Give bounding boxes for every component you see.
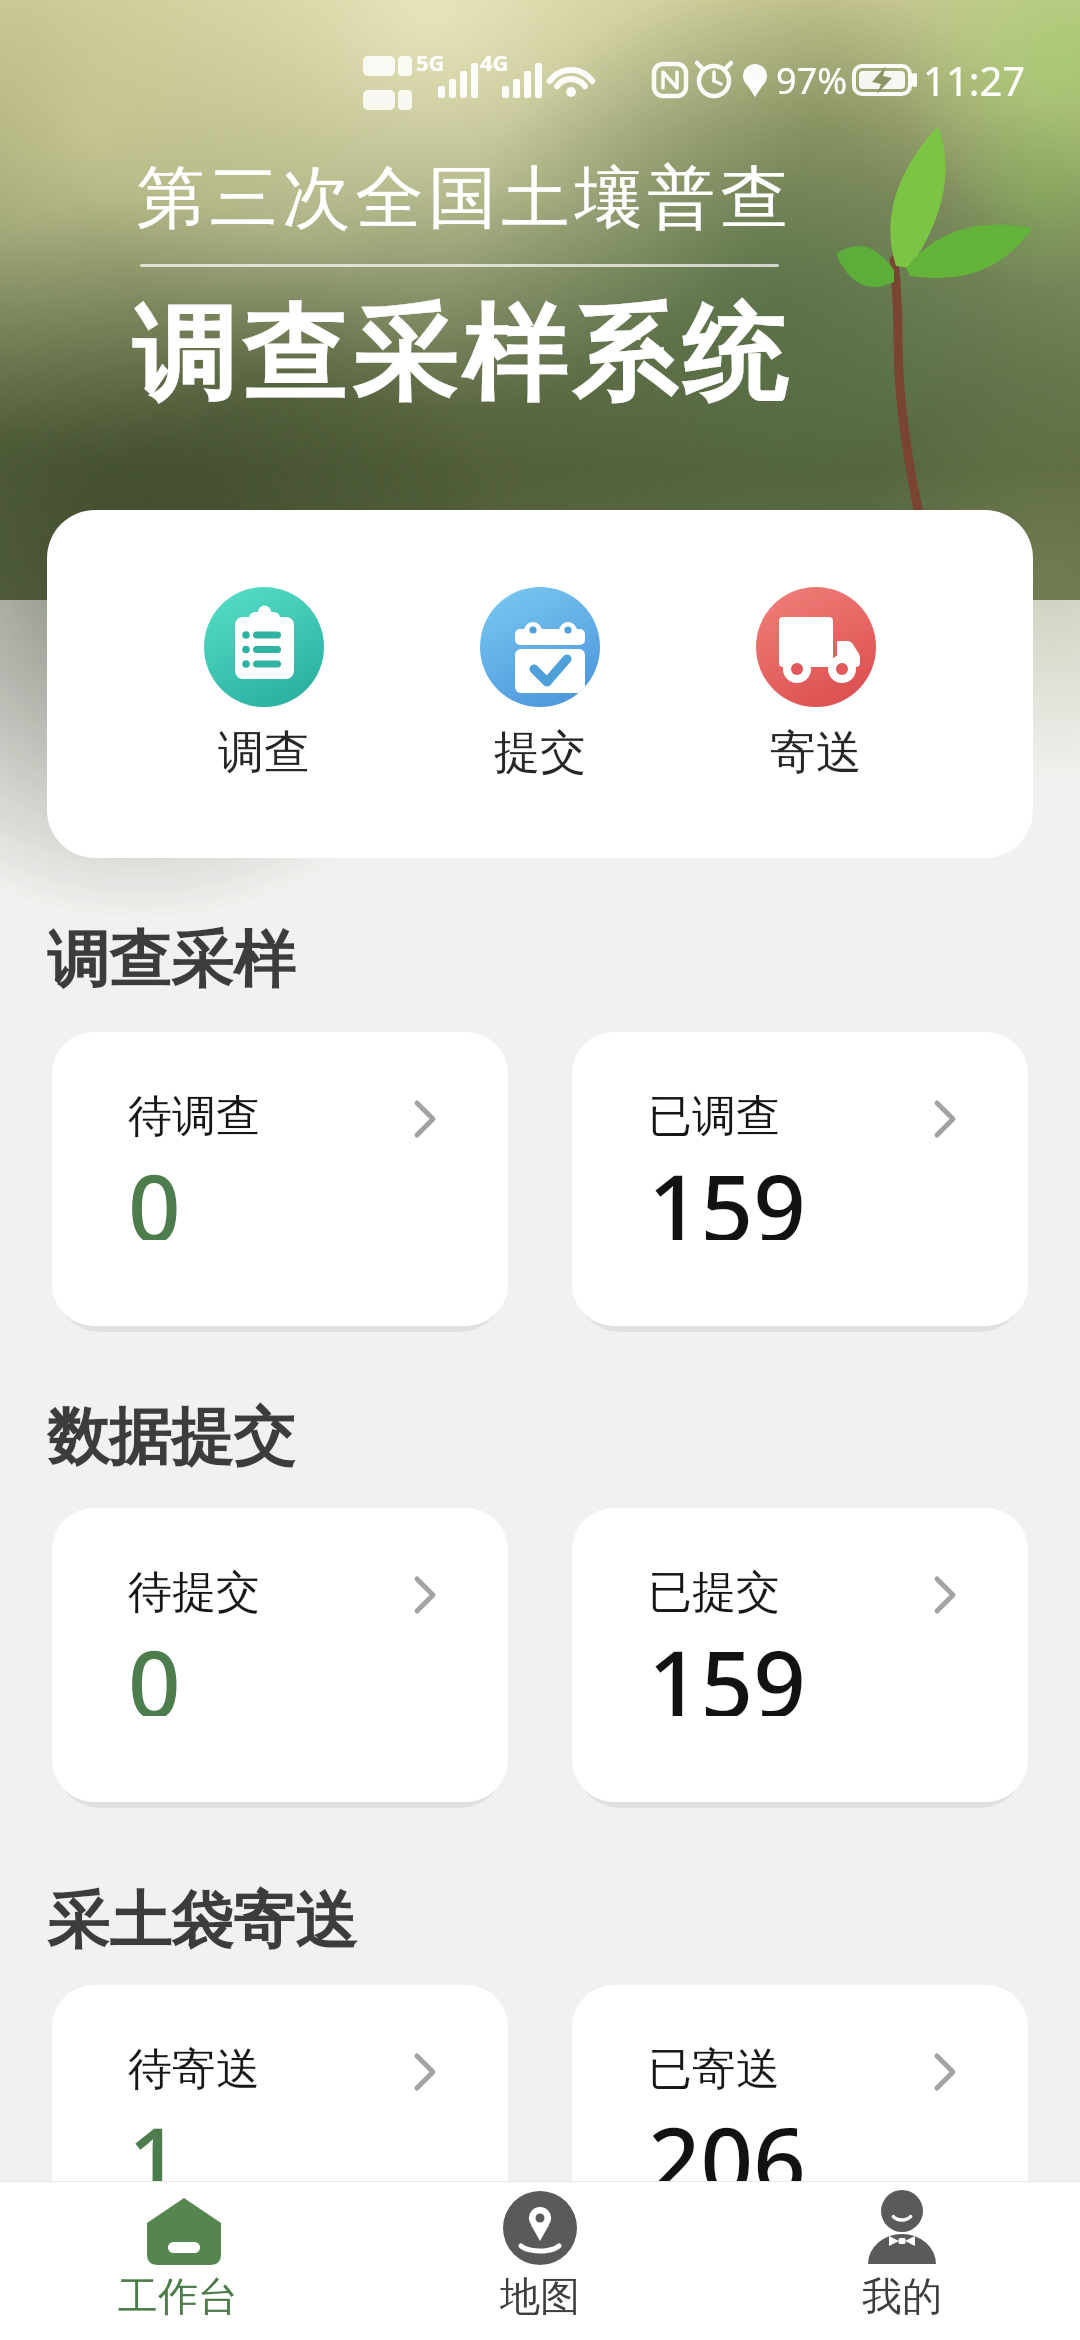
staticText: 我的 <box>862 2271 942 2321</box>
staticText: 1 <box>128 2097 181 2193</box>
staticText: 159 <box>648 1144 806 1240</box>
button[interactable]: 工作台 <box>88 2186 268 2336</box>
staticText: 4G <box>480 47 509 77</box>
staticText: 寄送 <box>770 724 862 782</box>
staticText: 待提交 <box>128 1565 260 1620</box>
staticText: 调查 <box>218 724 310 782</box>
button[interactable]: 提交 <box>460 587 620 803</box>
staticText: 数据提交 <box>47 1398 295 1476</box>
button[interactable]: 已调查 <box>572 1032 1028 1326</box>
button[interactable]: 寄送 <box>736 587 896 803</box>
staticText: 159 <box>648 1620 806 1716</box>
button[interactable]: 待调查 <box>52 1032 508 1326</box>
staticText: 97% <box>776 56 848 105</box>
button[interactable]: 待寄送 <box>52 1985 508 2279</box>
staticText: 提交 <box>494 724 586 782</box>
staticText: 待调查 <box>128 1089 260 1144</box>
button[interactable]: 地图 <box>450 2186 630 2336</box>
staticText: 已提交 <box>648 1565 780 1620</box>
button[interactable]: 已寄送 <box>572 1985 1028 2279</box>
staticText: 待寄送 <box>128 2042 260 2097</box>
button[interactable]: 待提交 <box>52 1508 508 1802</box>
staticText: 206 <box>648 2097 806 2193</box>
staticText: 采土袋寄送 <box>47 1882 357 1960</box>
button[interactable]: 调查 <box>184 587 344 803</box>
staticText: 5G <box>416 47 445 77</box>
staticText: 地图 <box>500 2271 580 2321</box>
staticText: 工作台 <box>118 2271 238 2321</box>
staticText: 已寄送 <box>648 2042 780 2097</box>
staticText: 调查采样系统 <box>129 290 789 421</box>
staticText: 0 <box>128 1620 181 1716</box>
button[interactable]: 已提交 <box>572 1508 1028 1802</box>
staticText: 调查采样 <box>47 921 295 999</box>
staticText: 0 <box>128 1144 181 1240</box>
staticText: 第三次全国土壤普查 <box>134 156 791 242</box>
staticText: 11:27 <box>923 53 1026 107</box>
staticText: 已调查 <box>648 1089 780 1144</box>
button[interactable]: 我的 <box>812 2186 992 2336</box>
